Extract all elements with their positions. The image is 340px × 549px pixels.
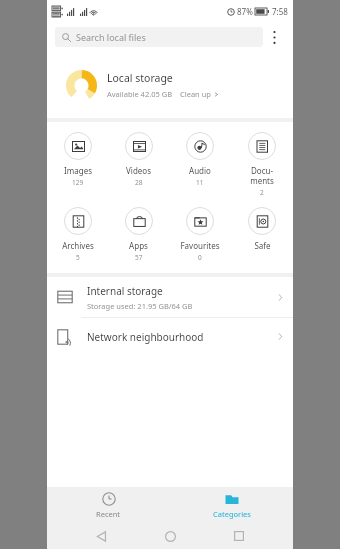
button[interactable]: Archives [47, 205, 108, 264]
staticText: 2 [260, 188, 264, 197]
staticText: 0 [198, 253, 202, 262]
staticText: Safe [254, 240, 271, 251]
staticText: Images [64, 165, 92, 176]
staticText: Network neighbourhood [87, 330, 278, 344]
staticText: Docu- ments [250, 165, 274, 186]
staticText: Audio [189, 165, 211, 176]
button[interactable]: Back [86, 523, 116, 549]
button[interactable]: Recents [224, 523, 254, 549]
button[interactable]: Internal storage [47, 277, 293, 317]
staticText: Storage used: 21.95 GB/64 GB [87, 301, 193, 311]
button[interactable]: Search local files [55, 27, 263, 47]
staticText: 7:58 [272, 6, 288, 17]
button[interactable]: Favourites [169, 205, 231, 264]
button[interactable]: Docu- ments [231, 130, 293, 199]
staticText: Apps [129, 240, 148, 251]
button[interactable]: Safe [231, 205, 293, 253]
staticText: 87% [237, 6, 253, 17]
staticText: Search local files [76, 31, 146, 43]
staticText: Recent [96, 509, 121, 519]
staticText: 129 [72, 178, 84, 187]
staticText: 5 [76, 253, 80, 262]
button[interactable]: Categories [170, 487, 293, 523]
staticText: Archives [62, 240, 94, 251]
button[interactable]: Recent [47, 487, 170, 523]
staticText: 57 [135, 253, 143, 262]
staticText: Favourites [180, 240, 220, 251]
staticText: Internal storage [87, 284, 163, 298]
staticText: Videos [126, 165, 151, 176]
button[interactable]: Images [47, 130, 108, 189]
button[interactable]: Network neighbourhood [47, 318, 293, 355]
button[interactable]: Videos [108, 130, 169, 189]
staticText: 28 [135, 178, 143, 187]
button[interactable]: Home [155, 523, 185, 549]
staticText: Local storage [107, 71, 173, 85]
staticText: 11 [196, 178, 204, 187]
staticText: Categories [213, 509, 251, 519]
staticText: Available 42.05 GB [107, 89, 173, 99]
button[interactable]: Audio [169, 130, 231, 189]
button[interactable]: Local storage [47, 52, 293, 118]
staticText: Clean up [180, 89, 211, 99]
button[interactable]: More options [263, 24, 285, 50]
button[interactable]: Apps [108, 205, 169, 264]
